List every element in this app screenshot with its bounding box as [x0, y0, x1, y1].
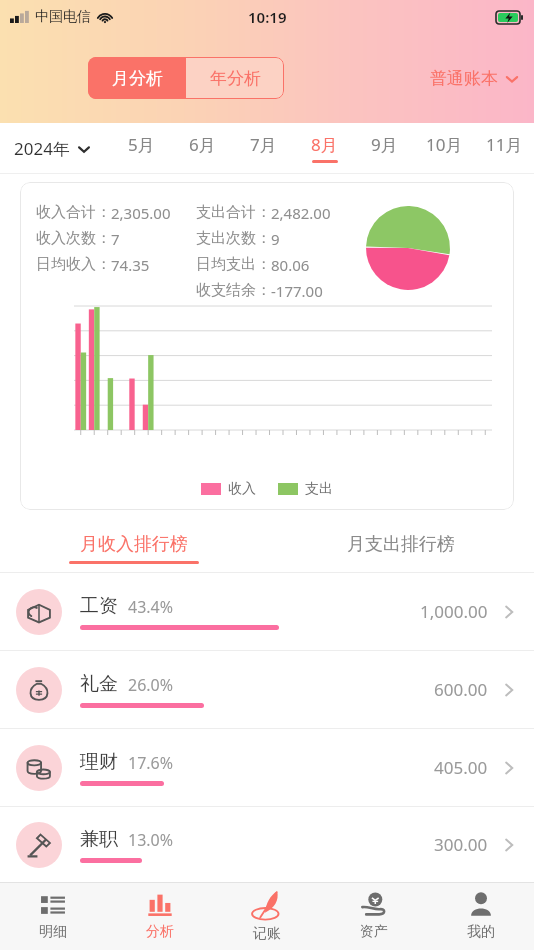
staticText: 10:19 [248, 7, 287, 27]
staticText: 405.00 [434, 756, 488, 779]
staticText: 10月 [426, 133, 463, 156]
staticText: 1,000.00 [420, 600, 488, 623]
button[interactable]: 10月 [414, 123, 474, 173]
button[interactable]: 8月 [294, 123, 354, 173]
button[interactable]: 资产 [320, 882, 427, 950]
staticText: 74.35 [111, 255, 150, 275]
button[interactable]: 月收入排行榜 [0, 524, 267, 572]
staticText: 礼金 [80, 672, 118, 696]
staticText: 支出合计： [196, 203, 271, 222]
staticText: 记账 [253, 925, 281, 943]
button[interactable]: 9月 [354, 123, 414, 173]
staticText: 兼职 [80, 827, 118, 851]
staticText: 收支结余： [196, 281, 271, 300]
button[interactable]: 11月 [474, 123, 534, 173]
staticText: 7月 [250, 133, 277, 156]
button[interactable]: 分析 [106, 882, 213, 950]
staticText: 8月 [311, 133, 338, 156]
staticText: 7 [111, 229, 120, 249]
button[interactable]: 年分析 [186, 57, 284, 99]
staticText: 明细 [39, 923, 67, 941]
staticText: 收入次数： [36, 229, 111, 248]
staticText: 17.6% [128, 752, 174, 774]
staticText: 26.0% [128, 674, 174, 696]
button[interactable]: 普通账本 [430, 68, 534, 89]
staticText: -177.00 [271, 281, 323, 301]
staticText: 年分析 [210, 68, 261, 89]
staticText: 2,482.00 [271, 203, 331, 223]
staticText: 月支出排行榜 [347, 533, 455, 556]
staticText: 2,305.00 [111, 203, 171, 223]
staticText: 600.00 [434, 678, 488, 701]
button[interactable]: 我的 [427, 882, 534, 950]
staticText: 300.00 [434, 833, 488, 856]
button[interactable]: 理财 [0, 729, 534, 806]
button[interactable]: 7月 [233, 123, 294, 173]
staticText: 工资 [80, 594, 118, 618]
staticText: 分析 [146, 923, 174, 941]
button[interactable]: 2024年 [14, 137, 91, 160]
staticText: 中国电信 [35, 8, 91, 26]
staticText: 2024年 [14, 137, 70, 160]
button[interactable]: 兼职 [0, 807, 534, 882]
staticText: 9 [271, 229, 280, 249]
staticText: 6月 [189, 133, 216, 156]
staticText: 日均支出： [196, 255, 271, 274]
button[interactable]: 明细 [0, 882, 106, 950]
staticText: 11月 [486, 133, 523, 156]
button[interactable]: 记账 [213, 882, 320, 950]
staticText: 9月 [371, 133, 398, 156]
staticText: 月分析 [112, 68, 163, 89]
staticText: 5月 [128, 133, 155, 156]
staticText: 支出 [305, 480, 333, 498]
staticText: 月收入排行榜 [80, 533, 188, 556]
button[interactable]: 礼金 [0, 651, 534, 728]
staticText: 支出次数： [196, 229, 271, 248]
button[interactable]: 工资 [0, 573, 534, 650]
staticText: 我的 [467, 923, 495, 941]
button[interactable]: 月分析 [88, 57, 186, 99]
staticText: 理财 [80, 750, 118, 774]
staticText: 80.06 [271, 255, 310, 275]
staticText: 13.0% [128, 829, 174, 851]
staticText: 收入合计： [36, 203, 111, 222]
staticText: 43.4% [128, 596, 174, 618]
staticText: 收入 [228, 480, 256, 498]
staticText: 资产 [360, 923, 388, 941]
button[interactable]: 月支出排行榜 [267, 524, 534, 572]
staticText: 普通账本 [430, 68, 498, 89]
button[interactable]: 6月 [172, 123, 233, 173]
button[interactable]: 5月 [111, 123, 172, 173]
staticText: 日均收入： [36, 255, 111, 274]
